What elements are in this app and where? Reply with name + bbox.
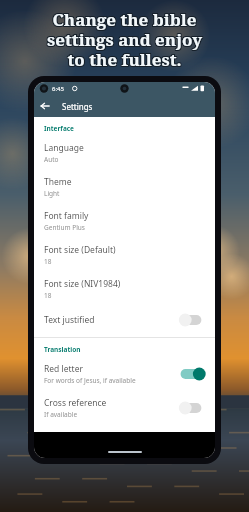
button[interactable]: Red letter xyxy=(179,366,205,382)
button[interactable]: Font size (NIV1984) xyxy=(34,272,215,306)
staticText: Font family xyxy=(44,210,89,222)
button[interactable]: Font family xyxy=(34,204,215,238)
button[interactable]: Theme xyxy=(34,170,215,204)
staticText: Change the bible settings and enjoy to t… xyxy=(6,7,243,70)
staticText: Translation xyxy=(44,345,81,354)
staticText: Interface xyxy=(44,124,75,133)
staticText: If available xyxy=(44,410,78,419)
button[interactable]: Cross reference xyxy=(179,400,205,416)
staticText: 18 xyxy=(44,257,52,266)
staticText: Font size (NIV1984) xyxy=(44,278,121,290)
staticText: Change the bible settings and enjoy to t… xyxy=(7,7,244,70)
button[interactable]: Text justified xyxy=(34,306,215,334)
staticText: Cross reference xyxy=(44,397,107,409)
staticText: Font size (Default) xyxy=(44,244,116,256)
staticText: Text justified xyxy=(44,314,95,326)
staticText: Language xyxy=(44,142,84,154)
staticText: Theme xyxy=(44,176,72,188)
staticText: Change the bible settings and enjoy to t… xyxy=(5,8,242,71)
button[interactable]: Text justified xyxy=(179,312,205,328)
button[interactable]: Cross reference xyxy=(34,391,215,425)
staticText: Settings xyxy=(62,101,93,112)
staticText: 18 xyxy=(44,291,52,300)
staticText: 6:45 xyxy=(52,85,64,93)
button[interactable]: Language xyxy=(34,136,215,170)
staticText: Change the bible settings and enjoy to t… xyxy=(5,7,242,70)
staticText: Change the bible settings and enjoy to t… xyxy=(5,9,242,72)
button[interactable]: Red letter xyxy=(34,357,215,391)
staticText: Change the bible settings and enjoy to t… xyxy=(7,9,244,72)
button[interactable]: Back xyxy=(34,95,56,117)
staticText: Red letter xyxy=(44,363,83,375)
staticText: Auto xyxy=(44,155,59,164)
staticText: Light xyxy=(44,189,60,198)
staticText: Change the bible settings and enjoy to t… xyxy=(7,8,244,71)
staticText: Change the bible settings and enjoy to t… xyxy=(6,9,243,72)
staticText: Change the bible settings and enjoy to t… xyxy=(6,8,243,71)
button[interactable]: Font size (Default) xyxy=(34,238,215,272)
staticText: Gentium Plus xyxy=(44,223,85,232)
staticText: For words of Jesus, if available xyxy=(44,376,136,385)
